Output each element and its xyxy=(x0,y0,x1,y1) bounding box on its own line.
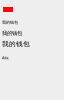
staticText: 我的钱包 xyxy=(2,20,18,25)
staticText: Abc xyxy=(2,55,9,60)
staticText: 我的钱包 xyxy=(2,30,22,37)
staticText: 我的钱包 xyxy=(2,40,30,48)
